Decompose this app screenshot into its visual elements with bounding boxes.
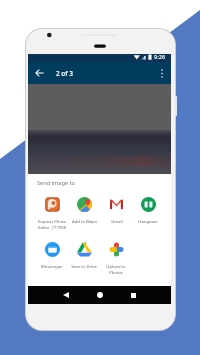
staticText: Upload to Photos <box>106 264 126 275</box>
button[interactable]: Express Photo Editor_777958 <box>36 197 68 237</box>
staticText: Save to Drive <box>71 264 97 270</box>
staticText: 2 of 3 <box>56 69 73 78</box>
button[interactable]: More options <box>154 62 170 84</box>
button[interactable]: Home <box>84 286 116 304</box>
button[interactable]: Gmail <box>100 197 132 237</box>
button[interactable]: Back <box>29 62 49 84</box>
button[interactable]: Messenger <box>36 242 68 282</box>
staticText: Messenger <box>41 264 63 270</box>
button[interactable]: Hangouts <box>132 197 164 237</box>
staticText: Add to Maps <box>72 219 97 225</box>
button[interactable]: Add to Maps <box>68 197 100 237</box>
staticText: 9:26 <box>154 53 166 61</box>
staticText: Hangouts <box>138 219 158 225</box>
button[interactable]: Save to Drive <box>68 242 100 282</box>
button[interactable]: Back <box>50 286 82 304</box>
staticText: Gmail <box>111 219 123 225</box>
button[interactable]: Upload to Photos <box>100 242 132 282</box>
staticText: Send image to <box>37 179 75 187</box>
button[interactable]: Recents <box>117 286 149 304</box>
staticText: Express Photo Editor_777958 <box>38 219 66 230</box>
